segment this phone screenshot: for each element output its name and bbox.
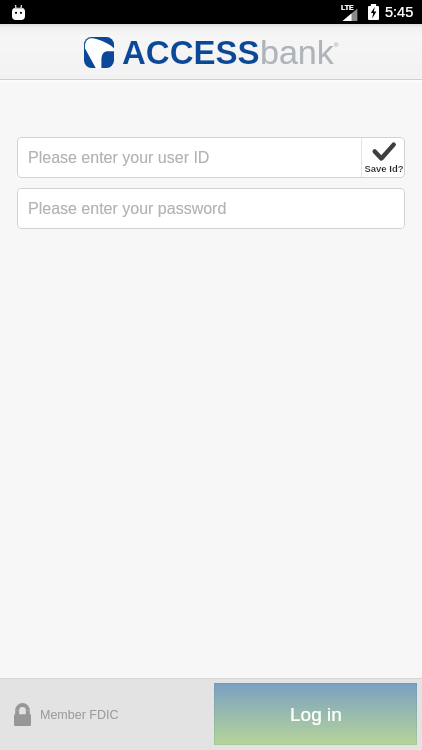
staticText: Save Id? <box>364 163 404 174</box>
staticText: ® <box>334 42 339 49</box>
other: Android <box>12 5 25 20</box>
staticText: 5:45 <box>385 4 414 20</box>
button[interactable]: Save Id <box>362 137 405 178</box>
staticText: ACCESS <box>122 34 260 71</box>
button[interactable]: Member FDIC <box>14 703 119 726</box>
button[interactable]: Log in <box>214 683 417 745</box>
staticText: Please enter your password <box>28 200 227 218</box>
staticText: LTE <box>341 4 354 12</box>
button[interactable]: Please enter your password <box>17 188 405 229</box>
staticText: bank <box>260 33 334 71</box>
staticText: Member FDIC <box>40 708 119 722</box>
staticText: Log in <box>290 704 342 725</box>
staticText: Please enter your user ID <box>28 149 210 167</box>
button[interactable]: Please enter your user ID <box>17 137 361 178</box>
